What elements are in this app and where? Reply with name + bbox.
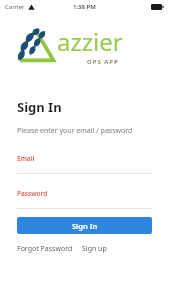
staticText: Forgot Password [17, 244, 73, 254]
staticText: OPS APP [87, 58, 119, 66]
staticText: Sign In [72, 221, 98, 231]
staticText: Password [17, 189, 48, 198]
staticText: Please enter your email / password [17, 126, 133, 136]
button[interactable]: Forgot Password [17, 242, 73, 256]
button[interactable]: Sign In [17, 217, 152, 234]
staticText: Email [17, 154, 35, 163]
staticText: Sign up [82, 244, 107, 254]
staticText: 1:38 PM [73, 3, 96, 11]
button[interactable]: Sign up [82, 242, 107, 256]
other: Battery [151, 4, 164, 10]
staticText: Carrier [5, 3, 25, 11]
other: Signal [28, 4, 35, 10]
staticText: azzier [57, 25, 123, 58]
staticText: Sign In [17, 98, 62, 116]
